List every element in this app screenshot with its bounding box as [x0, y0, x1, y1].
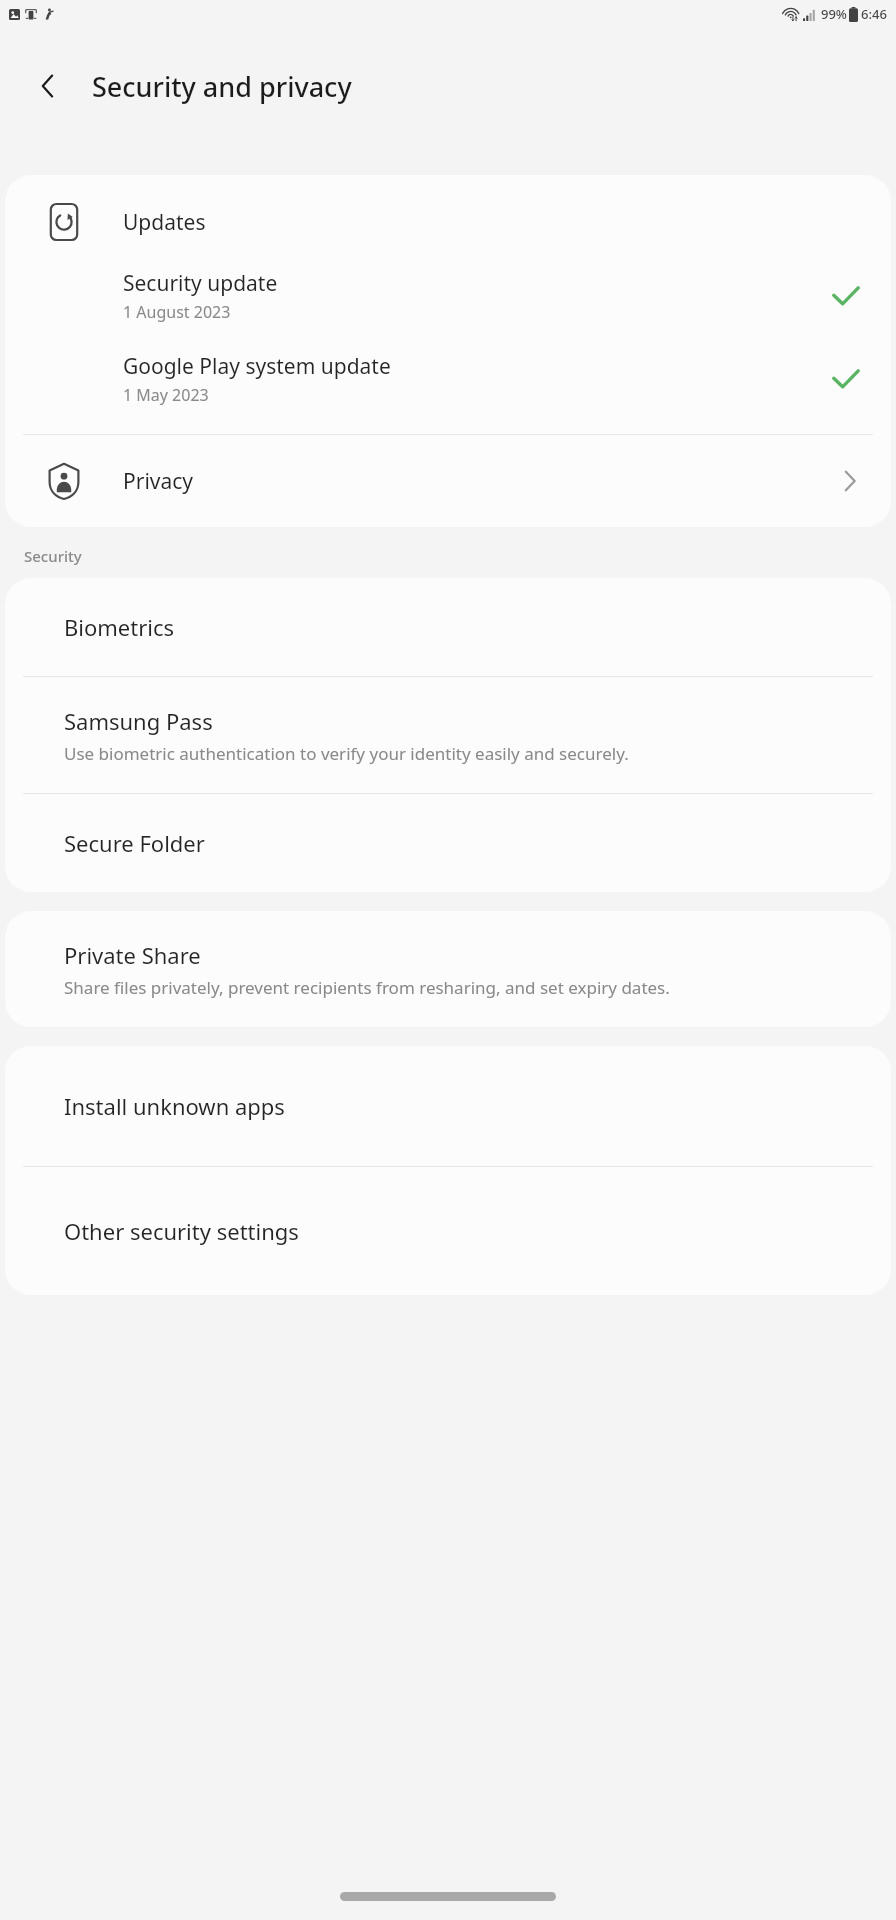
staticText: Biometrics — [64, 612, 175, 642]
staticText: 1 August 2023 — [123, 301, 231, 323]
button[interactable]: Security update — [5, 269, 891, 323]
button[interactable]: Privacy — [5, 435, 891, 527]
staticText: Share files privately, prevent recipient… — [64, 976, 670, 999]
button[interactable]: Biometrics — [5, 578, 891, 676]
button[interactable]: Updates — [5, 175, 891, 269]
staticText: 99% — [821, 5, 847, 23]
button[interactable]: Install unknown apps — [5, 1046, 891, 1166]
button[interactable]: Google Play system update — [5, 352, 891, 406]
button[interactable]: Private Share — [5, 911, 891, 1027]
staticText: Google Play system update — [123, 352, 391, 381]
button[interactable]: Other security settings — [5, 1167, 891, 1295]
staticText: Samsung Pass — [64, 706, 213, 736]
staticText: Install unknown apps — [64, 1091, 285, 1121]
staticText: 6:46 — [861, 5, 887, 23]
button[interactable]: Secure Folder — [5, 794, 891, 892]
staticText: Privacy — [123, 467, 837, 496]
button[interactable]: Back — [22, 60, 74, 112]
staticText: Other security settings — [64, 1216, 299, 1246]
staticText: Security — [24, 546, 82, 566]
staticText: Security and privacy — [92, 68, 352, 105]
staticText: Private Share — [64, 940, 201, 970]
staticText: Secure Folder — [64, 828, 205, 858]
staticText: Updates — [123, 208, 206, 237]
staticText: 1 May 2023 — [123, 384, 209, 406]
button[interactable]: Samsung Pass — [5, 677, 891, 793]
staticText: Use biometric authentication to verify y… — [64, 742, 629, 765]
staticText: Security update — [123, 269, 278, 298]
